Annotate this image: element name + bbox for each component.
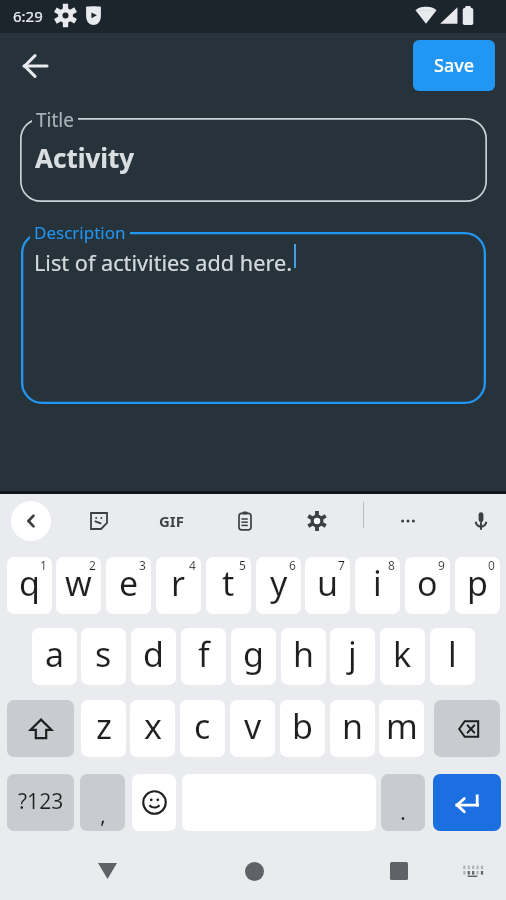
staticText: 3 bbox=[139, 557, 146, 573]
staticText: c bbox=[194, 703, 211, 749]
button[interactable]: f bbox=[181, 628, 226, 685]
button[interactable]: c bbox=[180, 700, 225, 757]
staticText: h bbox=[293, 631, 315, 677]
button[interactable]: k bbox=[380, 628, 425, 685]
staticText: 6:29 bbox=[13, 6, 43, 26]
staticText: o bbox=[417, 560, 438, 606]
button[interactable]: t bbox=[206, 557, 251, 614]
staticText: u bbox=[317, 560, 339, 606]
button[interactable]: ?123 bbox=[7, 774, 74, 831]
staticText: 7 bbox=[338, 557, 345, 573]
staticText: g bbox=[243, 631, 264, 677]
staticText: e bbox=[119, 560, 139, 606]
button[interactable]: b bbox=[280, 700, 325, 757]
staticText: ?123 bbox=[18, 787, 64, 816]
button[interactable]: Back bbox=[11, 42, 59, 90]
button[interactable]: Back bbox=[85, 849, 129, 893]
button[interactable]: p bbox=[455, 557, 500, 614]
staticText: p bbox=[467, 560, 488, 606]
button[interactable]: Clipboard bbox=[223, 499, 267, 543]
button[interactable]: GIF bbox=[149, 499, 193, 543]
button[interactable]: Shift bbox=[7, 700, 74, 757]
staticText: s bbox=[95, 631, 112, 677]
button[interactable]: r bbox=[156, 557, 201, 614]
button[interactable]: u bbox=[305, 557, 350, 614]
button[interactable]: More options bbox=[386, 499, 430, 543]
button[interactable]: i bbox=[355, 557, 400, 614]
staticText: Save bbox=[434, 53, 475, 78]
button[interactable]: a bbox=[32, 628, 77, 685]
button[interactable]: d bbox=[131, 628, 176, 685]
staticText: r bbox=[171, 560, 186, 606]
button[interactable]: l bbox=[430, 628, 475, 685]
button[interactable]: n bbox=[330, 700, 375, 757]
button[interactable]: z bbox=[81, 700, 126, 757]
staticText: z bbox=[96, 703, 112, 749]
button[interactable]: Recents bbox=[377, 849, 421, 893]
button[interactable]: , bbox=[80, 774, 125, 831]
button[interactable]: s bbox=[81, 628, 126, 685]
staticText: , bbox=[100, 799, 106, 829]
staticText: n bbox=[342, 703, 364, 749]
staticText: l bbox=[448, 631, 457, 677]
staticText: Activity bbox=[35, 140, 135, 175]
button[interactable]: v bbox=[230, 700, 275, 757]
staticText: Title bbox=[36, 107, 74, 133]
staticText: 2 bbox=[89, 557, 96, 573]
button[interactable]: Home bbox=[232, 849, 276, 893]
staticText: Description bbox=[34, 221, 126, 244]
button[interactable]: Settings bbox=[295, 499, 339, 543]
button[interactable]: j bbox=[330, 628, 375, 685]
staticText: y bbox=[270, 560, 288, 606]
button[interactable]: Enter bbox=[433, 774, 501, 831]
staticText: 4 bbox=[189, 557, 196, 573]
staticText: 1 bbox=[40, 557, 47, 573]
staticText: 6 bbox=[289, 557, 296, 573]
button[interactable]: Voice input bbox=[459, 499, 503, 543]
button[interactable]: . bbox=[381, 774, 425, 831]
staticText: x bbox=[144, 703, 162, 749]
button[interactable]: Previous bbox=[11, 501, 51, 541]
staticText: 0 bbox=[488, 557, 495, 573]
staticText: d bbox=[143, 631, 164, 677]
staticText: 5 bbox=[239, 557, 246, 573]
staticText: t bbox=[222, 560, 235, 606]
staticText: 8 bbox=[388, 557, 395, 573]
staticText: k bbox=[393, 631, 412, 677]
staticText: j bbox=[348, 631, 357, 677]
button[interactable]: Hide keyboard bbox=[450, 849, 494, 893]
staticText: i bbox=[373, 560, 382, 606]
button[interactable]: Backspace bbox=[434, 700, 500, 757]
button[interactable]: m bbox=[379, 700, 424, 757]
staticText: List of activities add here. bbox=[34, 248, 293, 278]
button[interactable]: x bbox=[130, 700, 175, 757]
staticText: GIF bbox=[159, 511, 184, 531]
button[interactable]: o bbox=[405, 557, 450, 614]
button[interactable]: Stickers bbox=[77, 499, 121, 543]
staticText: . bbox=[400, 796, 406, 826]
staticText: q bbox=[19, 560, 40, 606]
staticText: b bbox=[292, 703, 313, 749]
button[interactable]: q bbox=[7, 557, 52, 614]
button[interactable]: Emoji bbox=[132, 774, 176, 831]
button[interactable]: h bbox=[281, 628, 326, 685]
button[interactable]: w bbox=[56, 557, 101, 614]
staticText: a bbox=[45, 631, 65, 677]
button[interactable]: Save bbox=[413, 40, 495, 91]
button[interactable]: g bbox=[231, 628, 276, 685]
button[interactable]: y bbox=[256, 557, 301, 614]
button[interactable]: e bbox=[106, 557, 151, 614]
staticText: 9 bbox=[438, 557, 445, 573]
staticText: m bbox=[386, 703, 418, 749]
staticText: f bbox=[198, 631, 210, 677]
staticText: w bbox=[65, 560, 92, 606]
staticText: v bbox=[244, 703, 262, 749]
